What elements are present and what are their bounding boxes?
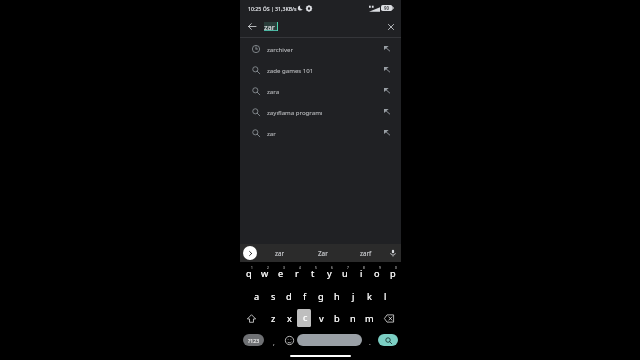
staticText: Zar	[318, 249, 328, 258]
button[interactable]: d	[281, 285, 297, 307]
staticText: v	[319, 312, 324, 325]
button[interactable]: b	[329, 307, 345, 329]
button[interactable]: zarf	[344, 244, 387, 262]
button[interactable]: zade games 101	[240, 59, 401, 80]
button[interactable]: ,	[264, 329, 283, 351]
staticText: d	[286, 290, 292, 303]
staticText: m	[365, 312, 374, 325]
staticText: 90	[384, 5, 390, 11]
staticText: ?123	[248, 337, 260, 344]
staticText: s	[271, 290, 276, 303]
button[interactable]: Shift	[240, 307, 265, 329]
button[interactable]: .	[362, 329, 378, 351]
staticText: g	[318, 290, 324, 303]
staticText: c	[303, 311, 308, 324]
staticText: 2	[267, 266, 269, 270]
button[interactable]: s	[265, 285, 281, 307]
button[interactable]: m	[361, 307, 377, 329]
staticText: e	[278, 267, 284, 280]
button[interactable]: More suggestions	[243, 246, 257, 260]
staticText: h	[334, 290, 340, 303]
button[interactable]: c	[297, 307, 313, 329]
staticText: 3	[283, 266, 285, 270]
button[interactable]: Back	[243, 18, 260, 35]
staticText: i	[360, 267, 363, 280]
staticText: x	[287, 312, 292, 325]
button[interactable]: h	[329, 285, 345, 307]
button[interactable]: l	[377, 285, 393, 307]
button[interactable]: zar	[240, 122, 401, 143]
button[interactable]: zar	[258, 244, 301, 262]
button[interactable]: f	[297, 285, 313, 307]
staticText: u	[342, 267, 348, 280]
staticText: zar	[264, 22, 275, 31]
staticText: ,	[273, 338, 275, 347]
button[interactable]: zarchiver	[240, 38, 401, 59]
staticText: zade games 101	[267, 66, 314, 74]
button[interactable]: 8	[353, 263, 369, 285]
button[interactable]: x	[281, 307, 297, 329]
staticText: zarchiver	[267, 45, 293, 53]
staticText: a	[254, 290, 260, 303]
staticText: j	[352, 290, 355, 303]
button[interactable]: z	[265, 307, 281, 329]
staticText: 9	[379, 266, 381, 270]
staticText: 7	[347, 266, 349, 270]
button[interactable]: Emoji	[283, 329, 297, 351]
staticText: zar	[267, 129, 276, 137]
button[interactable]: Use suggestion	[380, 125, 394, 139]
button[interactable]: Clear search	[382, 18, 399, 35]
staticText: zayıflama programı	[267, 108, 323, 116]
staticText: q	[246, 267, 252, 280]
staticText: zara	[267, 87, 280, 95]
button[interactable]: Use suggestion	[380, 104, 394, 118]
button[interactable]: zayıflama programı	[240, 101, 401, 122]
button[interactable]: 1	[240, 263, 257, 285]
button[interactable]: 5	[305, 263, 321, 285]
staticText: z	[271, 312, 276, 325]
staticText: p	[390, 267, 396, 280]
button[interactable]: 7	[337, 263, 353, 285]
button[interactable]: 9	[369, 263, 385, 285]
button[interactable]: n	[345, 307, 361, 329]
button[interactable]: Use suggestion	[380, 41, 394, 55]
button[interactable]: ?123	[243, 334, 264, 346]
staticText: t	[311, 267, 315, 280]
button[interactable]: Search	[378, 334, 398, 346]
button[interactable]: g	[313, 285, 329, 307]
button[interactable]: 0	[385, 263, 401, 285]
button[interactable]: Space	[297, 334, 362, 346]
button[interactable]: Voice input	[386, 246, 400, 260]
button[interactable]: 2	[257, 263, 273, 285]
button[interactable]: Use suggestion	[380, 62, 394, 76]
button[interactable]: a	[249, 285, 265, 307]
staticText: .	[369, 338, 371, 347]
button[interactable]: 4	[289, 263, 305, 285]
staticText: f	[303, 290, 307, 303]
staticText: r	[295, 267, 299, 280]
staticText: 0	[395, 266, 397, 270]
staticText: y	[327, 267, 332, 280]
staticText: 10:25 ÖS | 31,3KB/s	[248, 5, 297, 12]
staticText: l	[384, 290, 387, 303]
staticText: n	[350, 312, 356, 325]
button[interactable]: zara	[240, 80, 401, 101]
staticText: 1	[251, 266, 253, 270]
button[interactable]: 6	[321, 263, 337, 285]
staticText: k	[367, 290, 372, 303]
button[interactable]: Zar	[301, 244, 344, 262]
staticText: w	[261, 267, 269, 280]
staticText: zarf	[360, 249, 372, 258]
staticText: b	[334, 312, 340, 325]
button[interactable]: k	[361, 285, 377, 307]
staticText: zar	[275, 249, 285, 258]
button[interactable]: 3	[273, 263, 289, 285]
button[interactable]: Backspace	[377, 307, 401, 329]
button[interactable]: v	[313, 307, 329, 329]
staticText: 5	[315, 266, 317, 270]
button[interactable]: j	[345, 285, 361, 307]
staticText: 8	[363, 266, 365, 270]
staticText: 4	[299, 266, 301, 270]
staticText: o	[374, 267, 380, 280]
button[interactable]: Use suggestion	[380, 83, 394, 97]
